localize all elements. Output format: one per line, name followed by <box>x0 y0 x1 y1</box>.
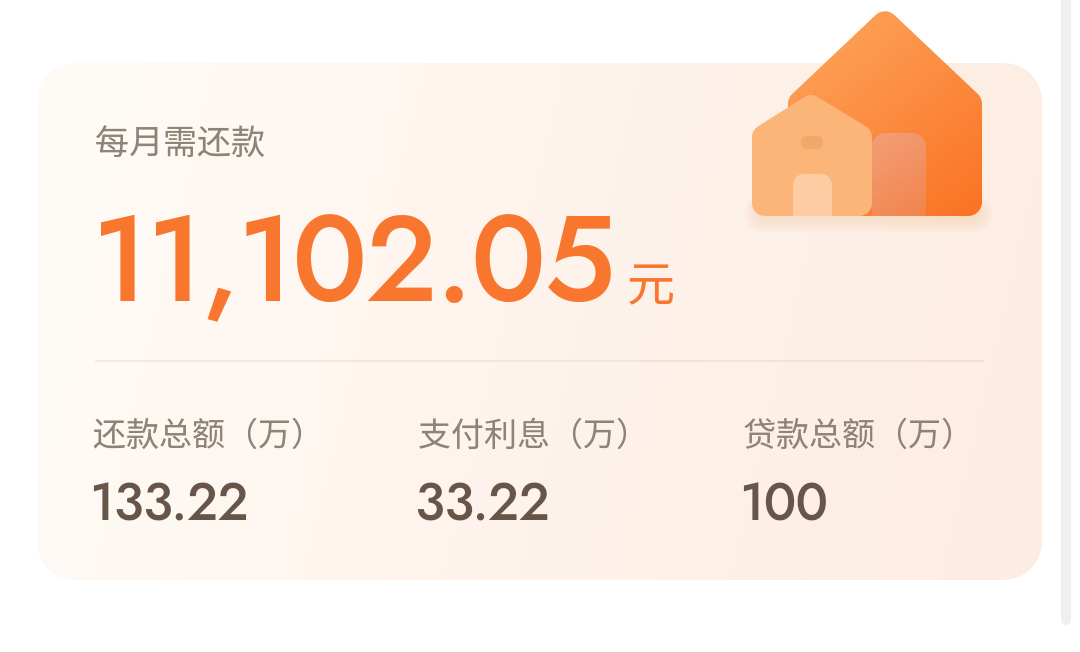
staticText: 还款总额（万） <box>93 408 324 456</box>
staticText: 每月需还款 <box>95 115 265 164</box>
staticText: 133.22 <box>90 464 248 539</box>
staticText: 贷款总额（万） <box>743 408 974 456</box>
staticText: 100 <box>740 464 828 539</box>
other: Home loan illustration <box>752 0 992 230</box>
staticText: 支付利息（万） <box>418 408 649 456</box>
staticText: 33.22 <box>415 464 550 539</box>
button[interactable]: 每月需还款 <box>37 63 1042 580</box>
staticText: 11,102.05 <box>92 173 614 346</box>
staticText: 元 <box>627 245 676 315</box>
